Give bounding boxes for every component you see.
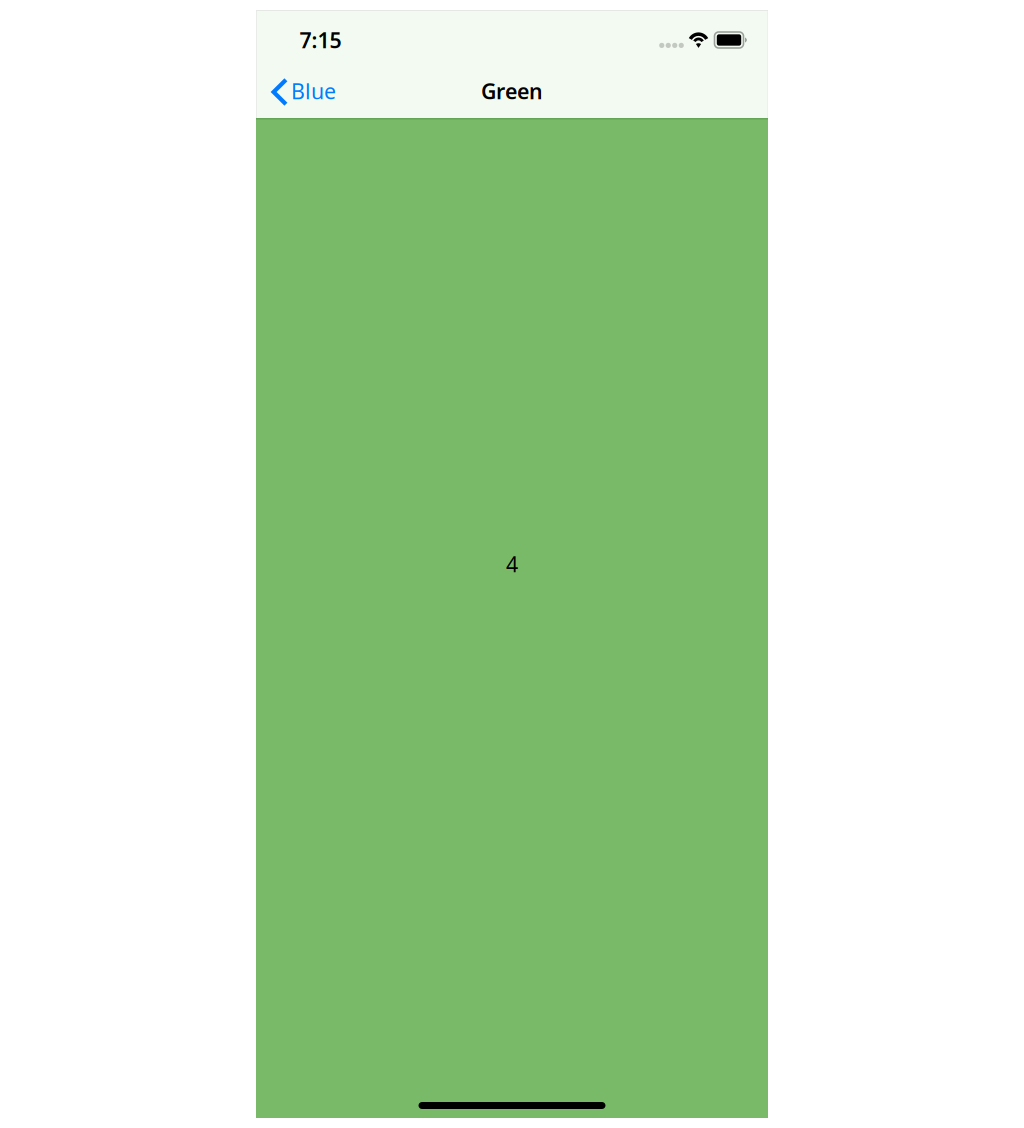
button[interactable]: Blue — [256, 68, 348, 114]
staticText: Green — [481, 77, 543, 105]
staticText: Blue — [291, 77, 336, 105]
staticText: 4 — [506, 550, 518, 578]
staticText: 7:15 — [299, 26, 341, 54]
